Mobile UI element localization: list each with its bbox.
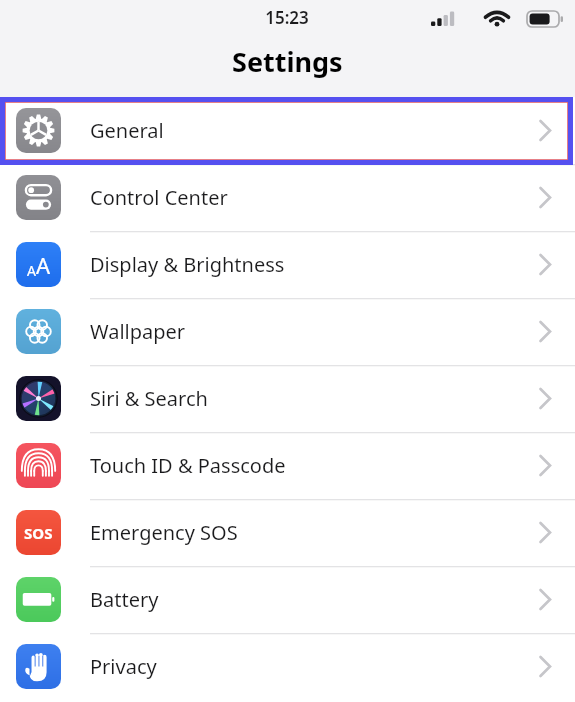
button[interactable]: General: [0, 97, 575, 164]
staticText: Settings: [232, 43, 343, 80]
staticText: Privacy: [90, 653, 157, 680]
staticText: General: [90, 117, 164, 144]
staticText: Emergency SOS: [90, 519, 238, 546]
button[interactable]: Wallpaper: [0, 298, 575, 365]
button[interactable]: Siri & Search: [0, 365, 575, 432]
staticText: Wallpaper: [90, 318, 186, 345]
button[interactable]: Touch ID & Passcode: [0, 432, 575, 499]
staticText: A: [27, 261, 36, 280]
staticText: A: [36, 250, 51, 280]
staticText: Display & Brightness: [90, 251, 285, 278]
staticText: Siri & Search: [90, 385, 208, 412]
staticText: Battery: [90, 586, 159, 613]
staticText: Touch ID & Passcode: [90, 452, 286, 479]
button[interactable]: Privacy: [0, 633, 575, 700]
button[interactable]: Control Center: [0, 164, 575, 231]
staticText: 15:23: [137, 6, 437, 29]
staticText: Control Center: [90, 184, 228, 211]
button[interactable]: SOS: [0, 499, 575, 566]
button[interactable]: Battery: [0, 566, 575, 633]
button[interactable]: A: [0, 231, 575, 298]
staticText: SOS: [24, 523, 53, 543]
